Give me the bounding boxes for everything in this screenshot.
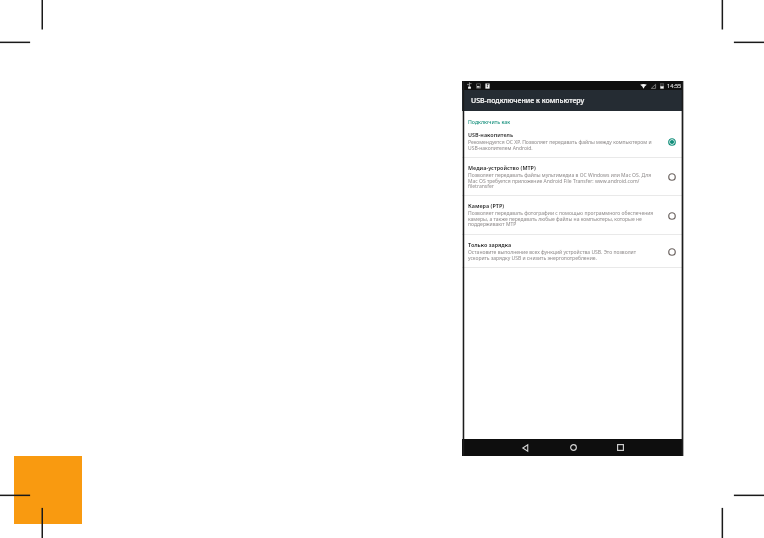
staticText: Камера (PTP) <box>468 202 505 209</box>
button[interactable]: Медиа-устройство (MTP) <box>462 158 682 196</box>
staticText: USB-накопитель <box>468 131 514 138</box>
staticText: Медиа-устройство (MTP) <box>468 164 536 171</box>
button[interactable]: Recent apps <box>612 439 629 456</box>
staticText: Только зарядка <box>468 241 512 248</box>
staticText: Остановите выполнение всех функций устро… <box>468 249 654 262</box>
staticText: Позволяет передавать фотографии с помощь… <box>468 210 654 228</box>
button[interactable]: Только зарядка <box>462 235 682 268</box>
button[interactable]: USB-накопитель <box>462 125 682 158</box>
button[interactable]: Камера (PTP) <box>462 196 682 235</box>
staticText: USB-подключение к компьютеру <box>471 96 585 106</box>
staticText: Позволяет передавать файлы мультимедиа в… <box>468 172 654 190</box>
staticText: 14:55 <box>667 82 682 90</box>
staticText: Подключить как <box>468 118 511 125</box>
button[interactable]: Home <box>565 439 582 456</box>
button[interactable]: Back <box>517 439 534 456</box>
staticText: Рекомендуется ОС XP. Позволяет передават… <box>468 139 654 152</box>
